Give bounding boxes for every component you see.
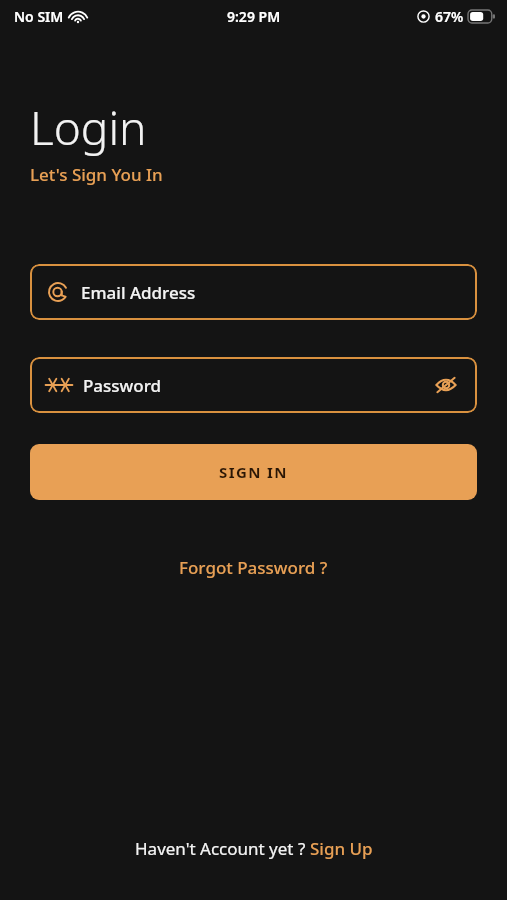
staticText: 9:29 PM (227, 7, 281, 26)
staticText: SIGN IN (219, 462, 288, 482)
staticText: No SIM (14, 7, 64, 26)
staticText: Email Address (81, 281, 196, 304)
button[interactable]: Email Address (30, 264, 477, 320)
staticText: Forgot Password ? (179, 556, 328, 579)
button[interactable]: Show password (431, 370, 461, 400)
button[interactable]: SIGN IN (30, 444, 477, 500)
staticText: Password (83, 374, 162, 397)
button[interactable]: Password (30, 357, 477, 413)
button[interactable]: Sign Up (310, 837, 373, 860)
staticText: Sign Up (310, 837, 373, 860)
staticText: Haven't Account yet ? (135, 837, 310, 860)
staticText: Let's Sign You In (30, 163, 163, 186)
staticText: 67% (435, 7, 464, 26)
button[interactable]: Forgot Password ? (171, 552, 336, 583)
staticText: Login (30, 96, 147, 159)
